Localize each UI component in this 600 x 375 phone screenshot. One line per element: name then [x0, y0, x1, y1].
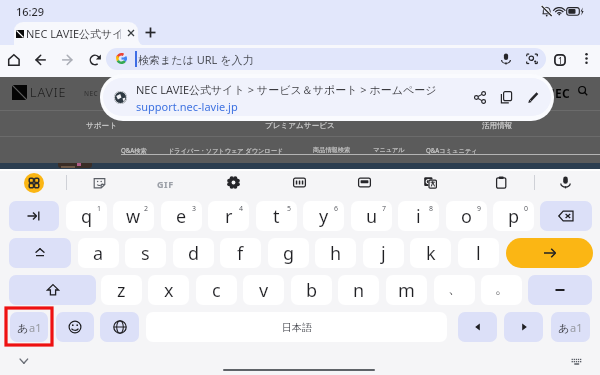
staticText: 16:29 — [16, 4, 45, 19]
staticText: k — [426, 241, 436, 266]
staticText: f — [237, 241, 244, 266]
button[interactable]: j — [363, 238, 404, 268]
staticText: e — [176, 204, 187, 229]
button[interactable]: n — [338, 275, 379, 305]
button[interactable] — [9, 201, 59, 231]
button[interactable]: Close tab — [124, 26, 138, 40]
staticText: support.nec-lavie.jp — [136, 99, 238, 114]
button[interactable] — [528, 275, 592, 305]
button[interactable]: r — [208, 201, 249, 231]
staticText: NEC — [84, 89, 98, 98]
button[interactable]: Settings — [227, 176, 240, 189]
button[interactable] — [56, 312, 94, 342]
button[interactable]: k — [410, 238, 451, 268]
button[interactable]: 、 — [434, 275, 475, 305]
button[interactable]: Share — [474, 91, 487, 104]
staticText: g — [283, 241, 295, 266]
button[interactable]: Keyboard apps — [24, 173, 44, 193]
button[interactable]: More options — [580, 52, 593, 65]
button[interactable]: e — [161, 201, 202, 231]
staticText: 6 — [334, 204, 339, 214]
button[interactable]: Enter — [506, 238, 593, 268]
button[interactable] — [504, 312, 543, 342]
button[interactable]: Voice search — [500, 53, 512, 65]
button[interactable]: NEC LAVIE公式サイト — [14, 22, 138, 45]
staticText: 5 — [287, 204, 292, 214]
button[interactable]: あ — [10, 312, 48, 342]
staticText: 1 — [558, 55, 563, 66]
button[interactable]: Tabs — [554, 54, 566, 66]
button[interactable]: Home — [8, 54, 20, 66]
button[interactable]: b — [291, 275, 332, 305]
staticText: w — [126, 204, 141, 229]
button[interactable]: 日本語 — [146, 312, 447, 342]
button[interactable] — [9, 275, 96, 305]
button[interactable]: あ — [551, 312, 590, 342]
button[interactable]: x — [148, 275, 189, 305]
button[interactable]: y — [303, 201, 344, 231]
staticText: 7 — [382, 204, 387, 214]
button[interactable]: Forward — [61, 54, 73, 66]
staticText: v — [259, 278, 269, 303]
staticText: o — [461, 204, 472, 229]
staticText: r — [225, 204, 233, 229]
button[interactable]: o — [446, 201, 487, 231]
staticText: a1 — [570, 320, 583, 335]
staticText: i — [416, 204, 421, 229]
staticText: j — [381, 241, 386, 266]
staticText: 。 — [495, 280, 509, 298]
button[interactable]: Number row — [293, 176, 306, 189]
button[interactable]: g — [268, 238, 309, 268]
button[interactable]: h — [315, 238, 356, 268]
button[interactable]: u — [351, 201, 392, 231]
button[interactable]: v — [243, 275, 284, 305]
button[interactable] — [9, 238, 71, 268]
button[interactable]: Edit — [527, 91, 540, 104]
button[interactable]: Floating keyboard — [358, 176, 371, 189]
button[interactable]: m — [386, 275, 427, 305]
staticText: ドライバー・ソフトウェア ダウンロード — [168, 146, 284, 154]
button[interactable]: Copy — [500, 91, 513, 104]
staticText: LAVIE — [30, 84, 67, 101]
button[interactable]: New tab — [143, 25, 158, 40]
staticText: c — [212, 278, 221, 303]
button[interactable]: t — [256, 201, 297, 231]
button[interactable]: z — [101, 275, 142, 305]
button[interactable] — [458, 312, 497, 342]
button[interactable]: Reload — [89, 54, 101, 66]
button[interactable]: 。 — [481, 275, 522, 305]
button[interactable]: a — [78, 238, 119, 268]
button[interactable]: q — [66, 201, 107, 231]
staticText: Q&A検索 — [121, 146, 147, 154]
button[interactable]: Stickers — [93, 176, 106, 189]
button[interactable]: f — [220, 238, 261, 268]
button[interactable]: 検索または URL を入力 — [106, 48, 546, 70]
staticText: NEC — [545, 85, 570, 101]
button[interactable]: i — [398, 201, 439, 231]
button[interactable]: NEC LAVIE公式サイト > サービス＆サポート > ホームページ — [100, 74, 554, 121]
button[interactable]: Voice input — [559, 176, 572, 189]
button[interactable]: d — [173, 238, 214, 268]
button[interactable] — [100, 312, 139, 342]
staticText: l — [476, 241, 481, 266]
staticText: 3 — [192, 204, 197, 214]
button[interactable]: Clipboard — [495, 176, 508, 189]
staticText: NEC LAVIE公式サイト > サービス＆サポート > ホームページ — [136, 82, 437, 97]
button[interactable]: c — [196, 275, 237, 305]
staticText: プレミアムサービス — [265, 121, 335, 131]
button[interactable]: l — [458, 238, 499, 268]
button[interactable]: p — [493, 201, 534, 231]
button[interactable]: Search with Lens — [526, 53, 538, 65]
staticText: p — [508, 204, 520, 229]
staticText: 8 — [429, 204, 434, 214]
staticText: あ — [558, 321, 570, 335]
button[interactable]: Translate — [424, 176, 437, 189]
button[interactable]: Hide keyboard — [16, 352, 32, 368]
button[interactable]: s — [125, 238, 166, 268]
staticText: GIF — [157, 178, 174, 190]
staticText: x — [164, 278, 174, 303]
button[interactable]: w — [113, 201, 154, 231]
button[interactable]: Back — [35, 54, 47, 66]
staticText: a1 — [29, 320, 42, 335]
button[interactable] — [540, 201, 592, 231]
